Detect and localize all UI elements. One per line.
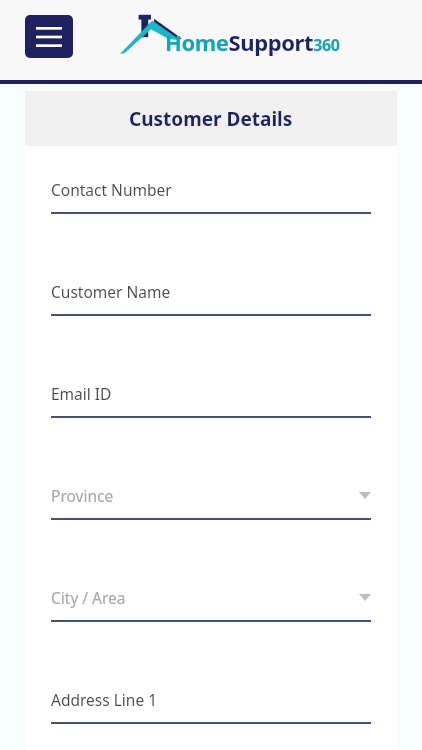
- staticText: Address Line 1: [51, 689, 158, 710]
- staticText: City / Area: [51, 587, 126, 608]
- button[interactable]: Email ID: [51, 378, 371, 480]
- button[interactable]: Contact Number: [51, 174, 371, 276]
- button[interactable]: Address Line 1: [51, 684, 371, 750]
- button[interactable]: City / Area: [51, 582, 371, 684]
- button[interactable]: Customer Name: [51, 276, 371, 378]
- staticText: Contact Number: [51, 179, 172, 200]
- staticText: Customer Details: [129, 106, 293, 132]
- button[interactable]: Open navigation menu: [25, 15, 73, 58]
- staticText: HomeSupport360: [165, 27, 340, 57]
- button[interactable]: Province: [51, 480, 371, 582]
- staticText: Email ID: [51, 383, 112, 404]
- staticText: Province: [51, 485, 114, 506]
- staticText: Customer Name: [51, 281, 171, 302]
